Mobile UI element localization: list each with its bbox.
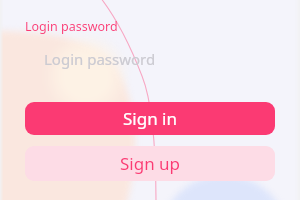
- button[interactable]: Sign up: [25, 146, 275, 181]
- staticText: Sign in: [123, 107, 177, 130]
- button[interactable]: Sign in: [25, 102, 275, 135]
- staticText: Sign up: [120, 152, 181, 175]
- staticText: Login password: [25, 18, 118, 35]
- staticText: Login password: [44, 49, 156, 69]
